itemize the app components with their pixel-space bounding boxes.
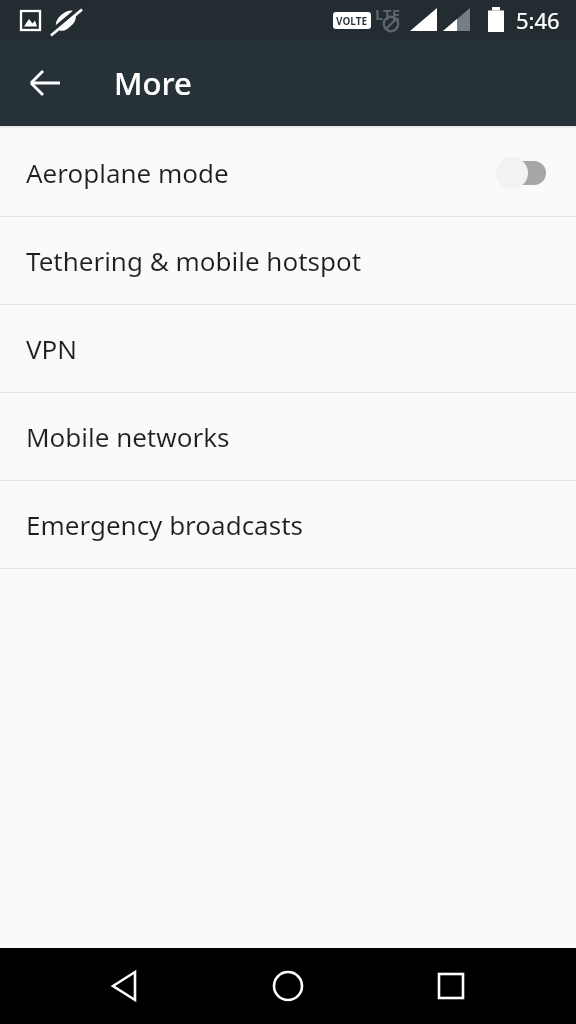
staticText: LTE: [375, 4, 401, 24]
staticText: Aeroplane mode: [26, 155, 229, 190]
button[interactable]: Mobile networks: [0, 393, 576, 480]
button[interactable]: Recent apps: [413, 948, 489, 1024]
button[interactable]: Back: [17, 55, 73, 111]
button[interactable]: VPN: [0, 305, 576, 392]
button[interactable]: Aeroplane mode toggle: [494, 156, 550, 190]
button[interactable]: Back: [87, 948, 163, 1024]
staticText: Tethering & mobile hotspot: [26, 243, 362, 278]
button[interactable]: Aeroplane mode: [0, 129, 576, 216]
button[interactable]: Tethering & mobile hotspot: [0, 217, 576, 304]
button[interactable]: Emergency broadcasts: [0, 481, 576, 568]
staticText: More: [114, 62, 192, 104]
staticText: VPN: [26, 331, 78, 366]
staticText: Emergency broadcasts: [26, 507, 304, 542]
staticText: 5:46: [516, 5, 560, 35]
staticText: VOLTE: [336, 14, 368, 28]
button[interactable]: Home: [250, 948, 326, 1024]
staticText: Mobile networks: [26, 419, 230, 454]
